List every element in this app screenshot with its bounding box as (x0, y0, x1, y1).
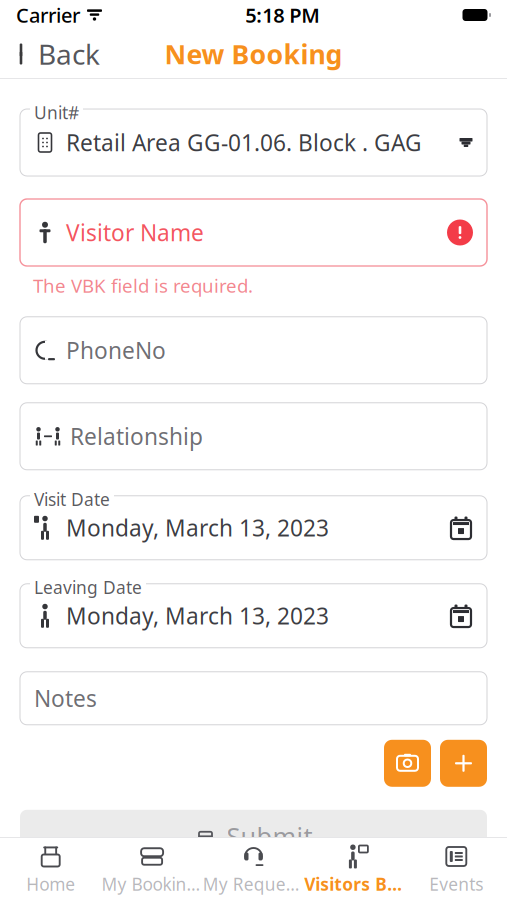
staticText: Submit (226, 819, 312, 853)
staticText: Leaving Date (34, 576, 142, 599)
staticText: My Bookings (101, 872, 203, 895)
button[interactable]: Visitors Booking (304, 836, 406, 900)
button[interactable]: My Bookings (101, 836, 203, 900)
staticText: The VBK field is required. (33, 273, 253, 298)
staticText: Relationship (70, 421, 203, 451)
staticText: Home (26, 872, 75, 895)
button[interactable]: My Requests (203, 836, 304, 900)
staticText: Visitor Name (66, 217, 204, 247)
staticText: Visitors Booking (304, 872, 406, 895)
staticText: Carrier (16, 2, 80, 28)
button[interactable]: Take photo (384, 740, 431, 787)
button[interactable]: Submit (20, 810, 487, 863)
staticText: Back (38, 35, 100, 73)
staticText: Notes (34, 683, 97, 713)
button[interactable]: Events (406, 836, 507, 900)
staticText: PhoneNo (66, 335, 166, 365)
button[interactable]: Back (0, 29, 100, 79)
staticText: New Booking (164, 36, 342, 72)
staticText: Retail Area GG-01.06. Block . GAG (66, 127, 422, 157)
staticText: Monday, March 13, 2023 (66, 601, 329, 631)
staticText: My Requests (203, 872, 304, 895)
button[interactable]: Add attachment (440, 740, 487, 787)
staticText: Unit# (34, 101, 79, 124)
staticText: Events (429, 872, 483, 895)
staticText: Visit Date (34, 488, 110, 511)
button[interactable]: Home (0, 836, 101, 900)
staticText: Monday, March 13, 2023 (66, 513, 329, 543)
staticText: 5:18 PM (245, 2, 320, 28)
